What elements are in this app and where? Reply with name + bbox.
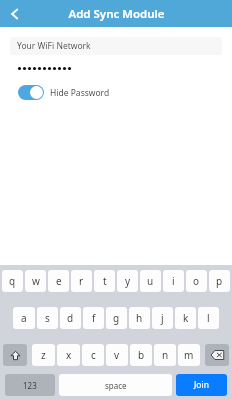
button[interactable]: Hide Password bbox=[10, 83, 116, 102]
button[interactable]: Back bbox=[0, 0, 30, 27]
staticText: n bbox=[162, 348, 169, 362]
staticText: m bbox=[184, 348, 194, 362]
staticText: f bbox=[92, 311, 96, 325]
button[interactable]: p bbox=[209, 270, 230, 292]
button[interactable]: h bbox=[129, 307, 150, 329]
button[interactable]: Your WiFi Network bbox=[10, 37, 222, 55]
staticText: y bbox=[125, 274, 131, 288]
button[interactable]: a bbox=[13, 307, 35, 329]
staticText: space bbox=[105, 380, 127, 391]
button[interactable] bbox=[10, 59, 222, 77]
staticText: h bbox=[136, 311, 143, 325]
staticText: z bbox=[41, 348, 46, 362]
staticText: k bbox=[183, 311, 189, 325]
staticText: q bbox=[9, 274, 16, 288]
button[interactable]: b bbox=[130, 344, 152, 366]
button[interactable]: m bbox=[178, 344, 200, 366]
staticText: a bbox=[21, 311, 27, 325]
staticText: r bbox=[79, 274, 84, 288]
button[interactable]: Join bbox=[176, 374, 227, 396]
button[interactable]: k bbox=[175, 307, 196, 329]
staticText: o bbox=[193, 274, 200, 288]
button[interactable]: u bbox=[140, 270, 161, 292]
button[interactable]: i bbox=[163, 270, 184, 292]
button[interactable]: n bbox=[154, 344, 176, 366]
button[interactable]: t bbox=[94, 270, 115, 292]
button[interactable]: z bbox=[32, 344, 55, 366]
button[interactable]: x bbox=[57, 344, 80, 366]
button[interactable]: l bbox=[198, 307, 219, 329]
button[interactable]: d bbox=[60, 307, 81, 329]
staticText: l bbox=[207, 311, 210, 325]
button[interactable]: s bbox=[37, 307, 58, 329]
staticText: s bbox=[45, 311, 50, 325]
staticText: v bbox=[114, 348, 120, 362]
button[interactable]: o bbox=[186, 270, 207, 292]
staticText: x bbox=[66, 348, 72, 362]
staticText: e bbox=[56, 274, 62, 288]
staticText: b bbox=[138, 348, 145, 362]
staticText: Join bbox=[194, 379, 209, 391]
button[interactable]: 123 bbox=[5, 374, 55, 396]
staticText: p bbox=[216, 274, 223, 288]
staticText: c bbox=[91, 348, 96, 362]
staticText: j bbox=[161, 311, 164, 325]
button[interactable]: Backspace bbox=[205, 344, 229, 366]
button[interactable]: Shift bbox=[3, 344, 27, 366]
staticText: d bbox=[67, 311, 74, 325]
staticText: Your WiFi Network bbox=[17, 40, 91, 52]
button[interactable]: e bbox=[48, 270, 69, 292]
staticText: Hide Password bbox=[50, 87, 110, 99]
button[interactable]: c bbox=[82, 344, 104, 366]
button[interactable]: w bbox=[25, 270, 46, 292]
staticText: 123 bbox=[23, 380, 37, 391]
button[interactable]: space bbox=[59, 374, 172, 396]
button[interactable]: y bbox=[117, 270, 138, 292]
button[interactable]: q bbox=[2, 270, 23, 292]
staticText: t bbox=[103, 274, 107, 288]
button[interactable]: r bbox=[71, 270, 92, 292]
button[interactable]: j bbox=[152, 307, 173, 329]
button[interactable]: g bbox=[106, 307, 127, 329]
staticText: i bbox=[172, 274, 175, 288]
staticText: Add Sync Module bbox=[68, 6, 165, 22]
button[interactable]: f bbox=[83, 307, 104, 329]
button[interactable]: v bbox=[106, 344, 128, 366]
staticText: g bbox=[113, 311, 120, 325]
staticText: w bbox=[32, 274, 40, 288]
staticText: u bbox=[147, 274, 154, 288]
